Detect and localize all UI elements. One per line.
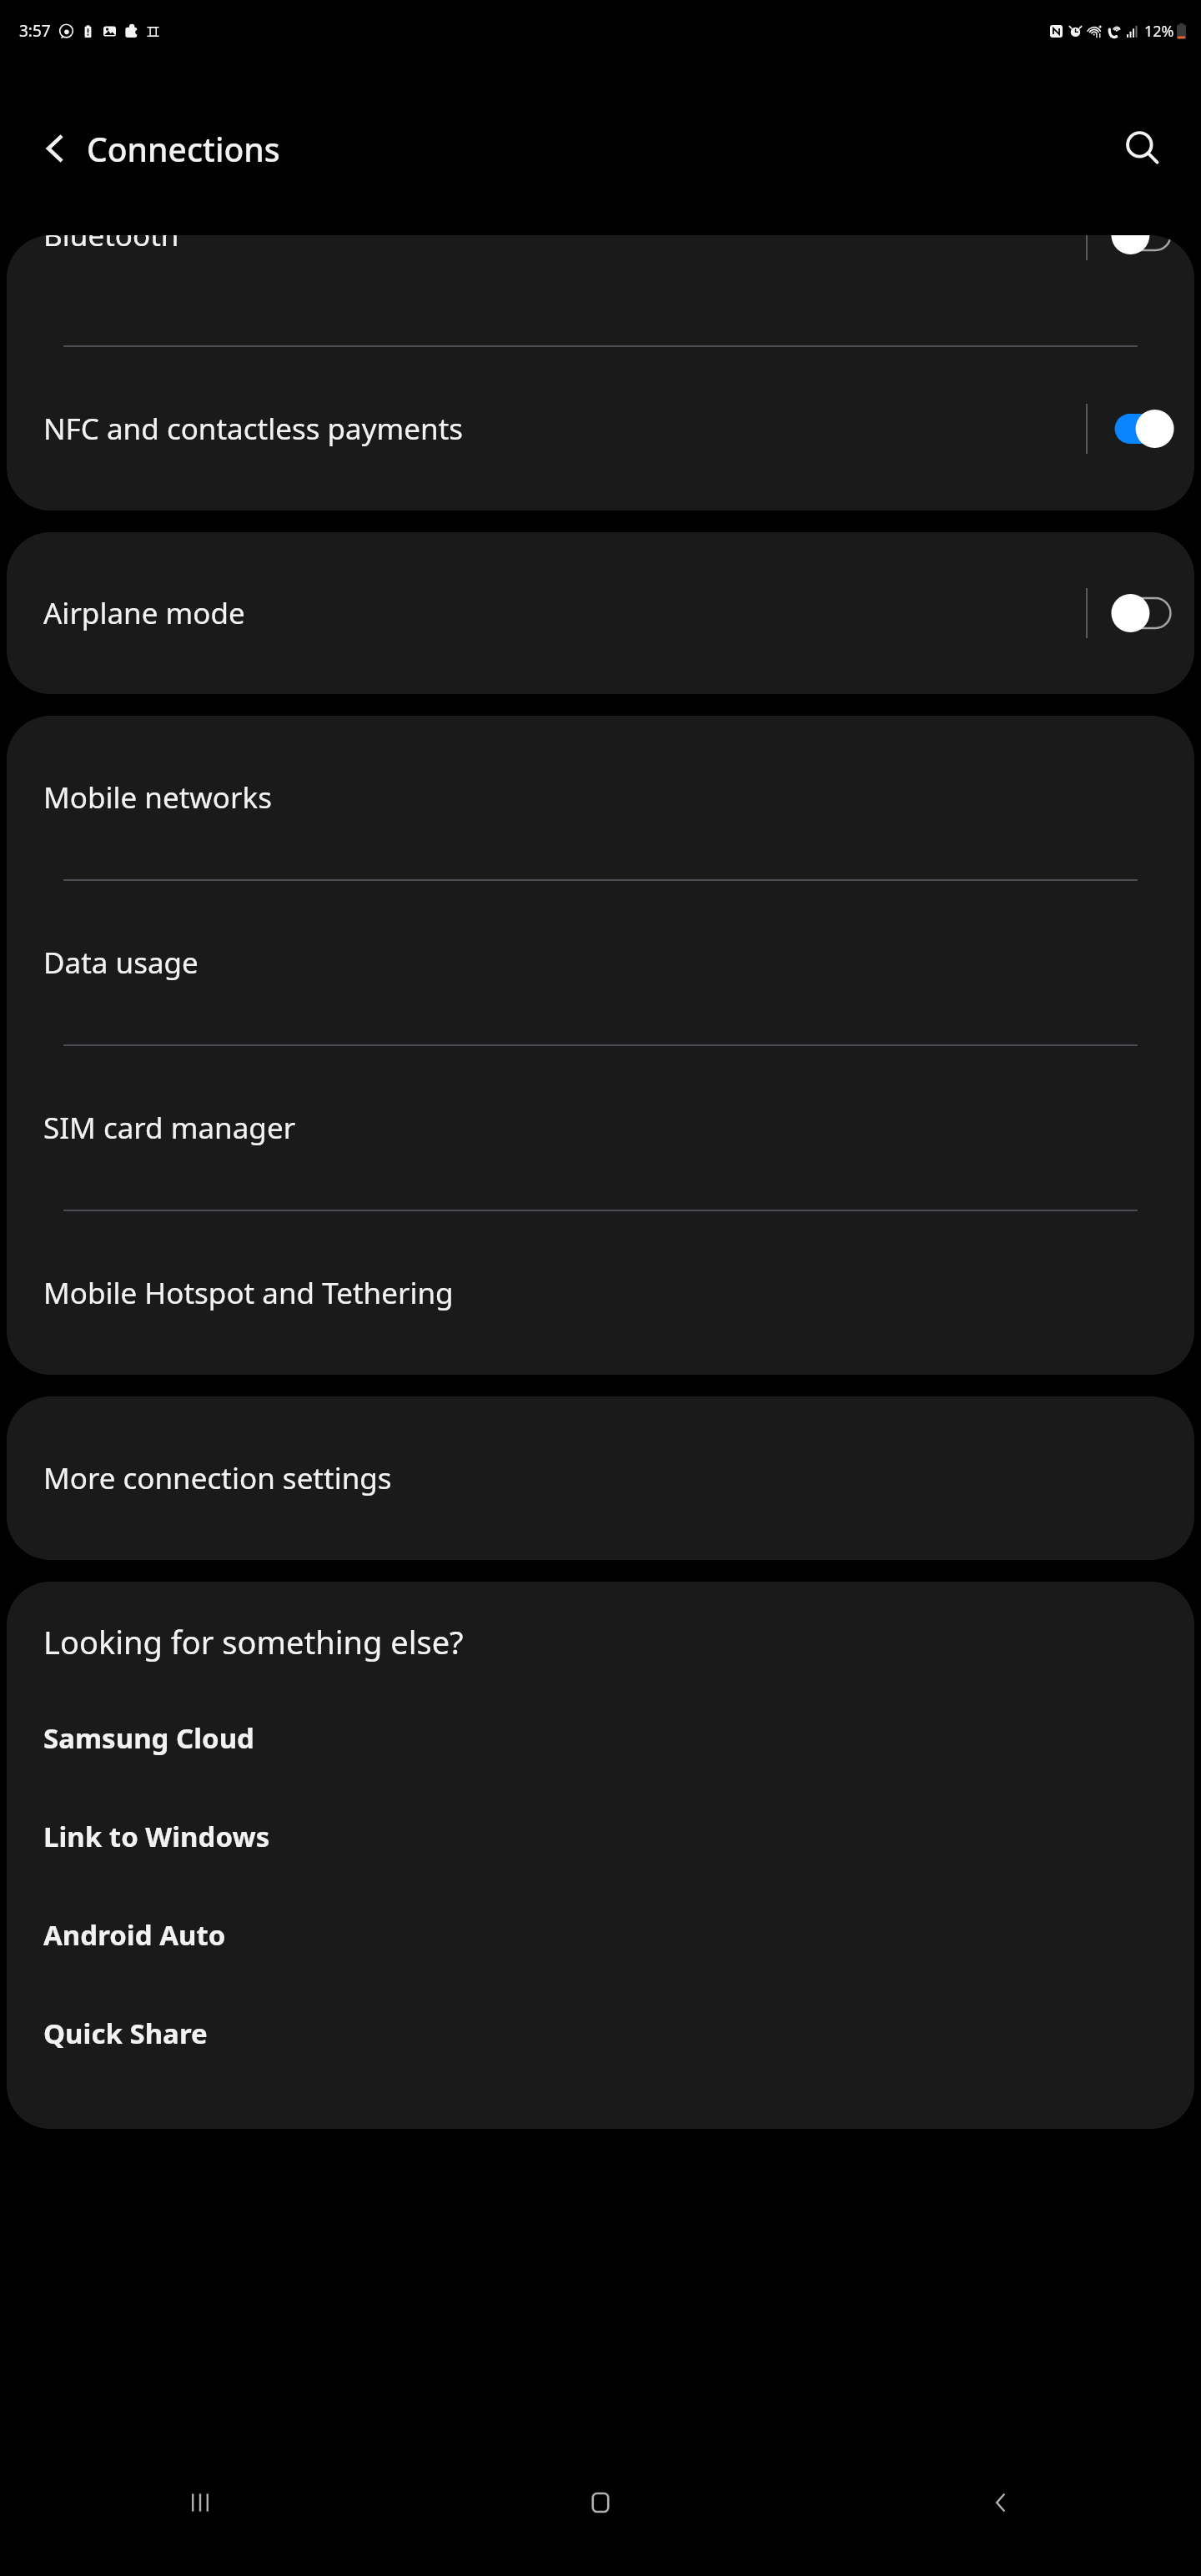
button[interactable]: Search: [1103, 108, 1183, 189]
staticText: Connections: [87, 127, 280, 171]
staticText: Samsung Cloud: [43, 1719, 254, 1757]
staticText: Mobile Hotspot and Tethering: [43, 1273, 1194, 1313]
staticText: NFC and contactless payments: [43, 409, 1086, 449]
staticText: Android Auto: [43, 1916, 226, 1954]
button[interactable]: NFC and contactless payments: [7, 347, 1194, 511]
button[interactable]: Samsung Cloud: [7, 1688, 1194, 1787]
button[interactable]: Mobile networks: [7, 716, 1194, 879]
staticText: More connection settings: [43, 1458, 1194, 1498]
button[interactable]: Recent apps: [0, 2429, 400, 2576]
button[interactable]: Android Auto: [7, 1885, 1194, 1984]
staticText: Bluetooth: [43, 235, 1086, 255]
button[interactable]: Home: [400, 2429, 801, 2576]
button[interactable]: Back: [801, 2429, 1201, 2576]
staticText: Quick Share: [43, 2015, 208, 2052]
button[interactable]: Mobile Hotspot and Tethering: [7, 1211, 1194, 1375]
button[interactable]: Bluetooth: [7, 235, 1194, 290]
staticText: SIM card manager: [43, 1108, 1194, 1148]
button[interactable]: More connection settings: [7, 1396, 1194, 1560]
button[interactable]: Navigate up: [18, 112, 92, 185]
staticText: Airplane mode: [43, 593, 1086, 633]
staticText: Data usage: [43, 943, 1194, 983]
button[interactable]: Airplane mode: [7, 532, 1194, 694]
staticText: Link to Windows: [43, 1818, 270, 1855]
staticText: Mobile networks: [43, 777, 1194, 818]
button[interactable]: Link to Windows: [7, 1787, 1194, 1885]
button[interactable]: SIM card manager: [7, 1046, 1194, 1210]
staticText: Looking for something else?: [43, 1620, 464, 1663]
button[interactable]: Quick Share: [7, 1984, 1194, 2082]
staticText: 3:57: [19, 20, 51, 42]
staticText: 12%: [1144, 21, 1174, 42]
button[interactable]: Data usage: [7, 881, 1194, 1044]
